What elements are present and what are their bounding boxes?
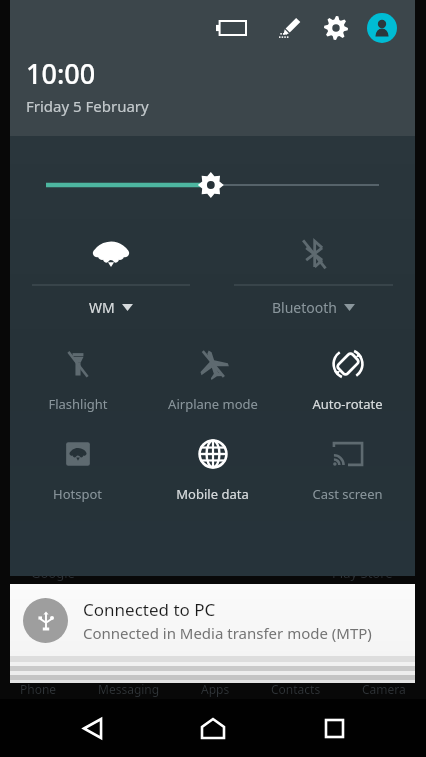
button[interactable]: Cast screen: [280, 435, 415, 503]
staticText: Camera: [362, 681, 406, 697]
staticText: Play Store: [332, 564, 393, 582]
button[interactable]: Settings: [317, 9, 355, 47]
button[interactable]: Hotspot: [10, 435, 145, 503]
staticText: Hotspot: [53, 485, 102, 503]
button[interactable]: WM: [10, 234, 212, 317]
staticText: Connected to PC: [83, 598, 216, 621]
staticText: Google: [31, 564, 75, 582]
staticText: 10:00: [26, 55, 96, 92]
staticText: Phone: [20, 681, 57, 697]
staticText: WM: [89, 298, 115, 317]
button[interactable]: Airplane mode: [145, 345, 280, 413]
staticText: Connected in Media transfer mode (MTP): [83, 623, 372, 643]
button[interactable]: Bluetooth: [212, 234, 415, 317]
button[interactable]: Battery: [211, 8, 251, 48]
button[interactable]: Recent apps: [305, 699, 363, 757]
button[interactable]: Home: [184, 699, 242, 757]
staticText: Cast screen: [312, 485, 383, 503]
button[interactable]: Auto-rotate: [280, 345, 415, 413]
staticText: Apps: [201, 681, 230, 697]
staticText: Messaging: [98, 681, 160, 697]
staticText: Airplane mode: [168, 395, 258, 413]
staticText: Auto-rotate: [312, 395, 383, 413]
button[interactable]: Mobile data: [145, 435, 280, 503]
button[interactable]: Flashlight: [10, 345, 145, 413]
staticText: Mobile data: [176, 485, 249, 503]
staticText: Flashlight: [48, 395, 108, 413]
staticText: Contacts: [271, 681, 321, 697]
button[interactable]: Back: [63, 699, 121, 757]
button[interactable]: Connected to PC: [10, 584, 415, 656]
button[interactable]: Brightness: [46, 168, 379, 202]
staticText: Friday 5 February: [26, 96, 149, 116]
staticText: Bluetooth: [272, 298, 337, 317]
button[interactable]: User profile: [363, 9, 401, 47]
button[interactable]: Edit: [271, 9, 309, 47]
